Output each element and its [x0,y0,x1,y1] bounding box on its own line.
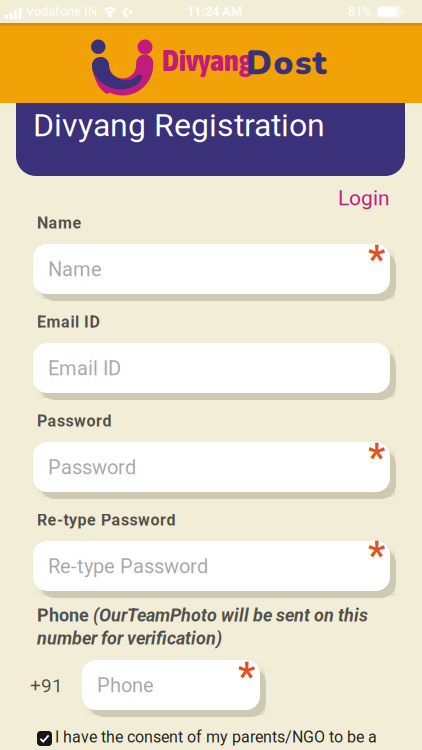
staticText: +91 [30,675,63,697]
staticText: Password [37,412,111,430]
button[interactable]: Password [33,442,390,492]
staticText: Divyang Registration [33,107,325,144]
button[interactable]: Phone [82,660,260,710]
staticText: Re-type Password [48,555,208,578]
staticText: 11:24 AM [187,4,242,19]
staticText: Phone (OurTeamPhoto will be sent on this [37,605,368,626]
staticText: Password [48,456,136,479]
button[interactable]: Re-type Password [33,541,390,591]
staticText: Re-type Password [37,511,175,529]
button[interactable]: Name [33,244,390,294]
staticText: Vodafone IN [26,4,97,19]
staticText: Name [48,258,102,281]
staticText: I have the consent of my parents/NGO to … [55,728,377,746]
staticText: * [238,655,255,698]
staticText: Email ID [37,313,99,331]
staticText: * [368,238,385,281]
staticText: * [368,534,385,577]
staticText: * [368,436,385,479]
button[interactable]: Email ID [33,343,390,393]
staticText: Email ID [48,357,121,380]
staticText: Divyang [162,43,252,77]
button[interactable]: Login [338,186,390,210]
staticText: Login [338,186,390,210]
staticText: Name [37,214,81,232]
staticText: Dost [246,41,326,86]
staticText: 81% [348,4,372,19]
button[interactable]: I have the consent of my parents/NGO [37,731,52,746]
staticText: Phone [97,674,154,697]
staticText: number for verification) [37,628,222,649]
